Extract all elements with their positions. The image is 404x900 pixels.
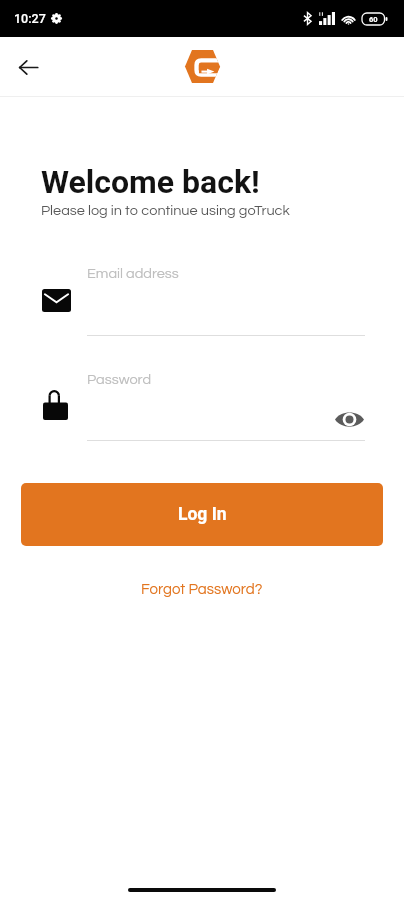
button[interactable]: Back [6, 45, 50, 89]
staticText: 60 [369, 15, 378, 24]
button[interactable]: Show password [330, 400, 368, 438]
staticText: Log In [178, 504, 227, 525]
staticText: Email address [87, 266, 179, 281]
button[interactable]: Forgot Password? [133, 576, 271, 602]
staticText: Password [87, 372, 152, 387]
staticText: Welcome back! [41, 163, 260, 201]
staticText: Forgot Password? [141, 582, 263, 597]
staticText: 10:27 [14, 11, 46, 26]
staticText: Please log in to continue using goTruck [41, 203, 290, 218]
button[interactable]: Log In [21, 483, 383, 546]
